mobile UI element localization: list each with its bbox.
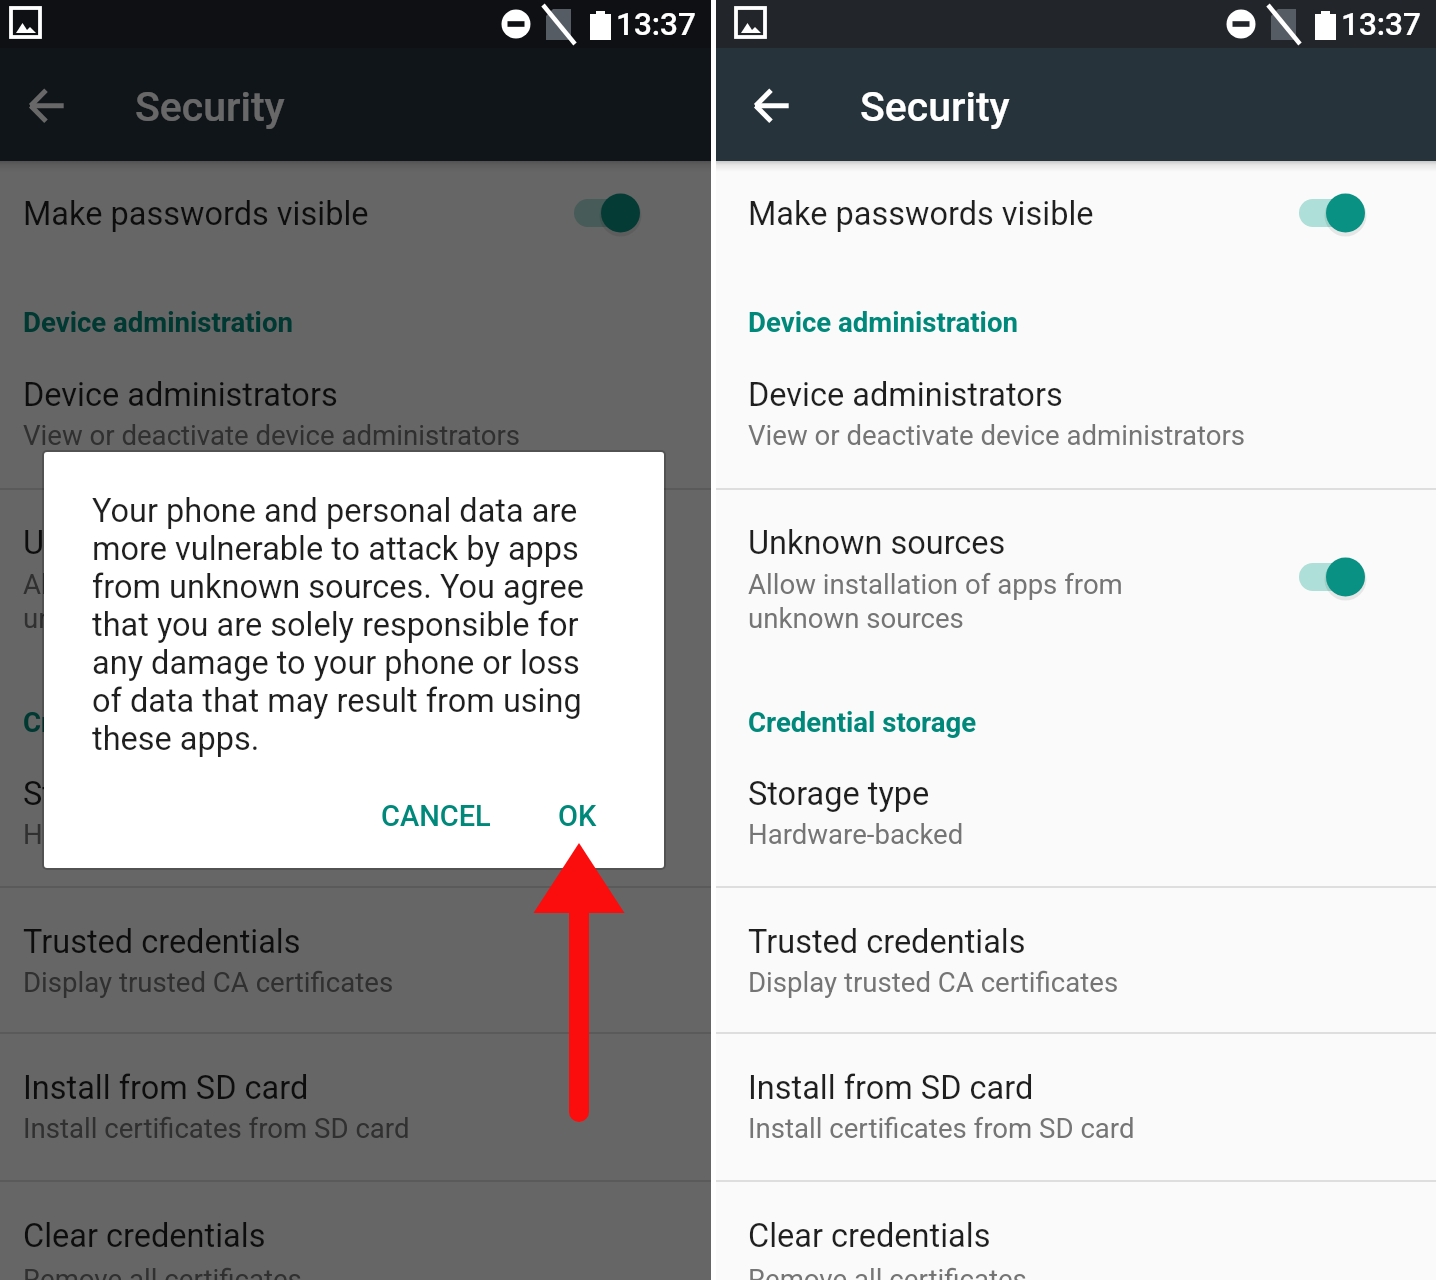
- staticText: Unknown sources: [23, 524, 281, 562]
- button[interactable]: [716, 888, 1436, 1032]
- staticText: Device administration: [23, 306, 293, 338]
- button[interactable]: [0, 296, 711, 488]
- staticText: OK: [558, 799, 597, 833]
- button[interactable]: [0, 161, 711, 276]
- staticText: Security: [135, 83, 285, 131]
- staticText: Hardware-backed: [23, 818, 239, 850]
- staticText: Clear credentials: [23, 1217, 266, 1255]
- staticText: Trusted credentials: [748, 923, 1026, 961]
- button[interactable]: [0, 490, 711, 886]
- staticText: Display trusted CA certificates: [23, 966, 394, 998]
- button[interactable]: [716, 296, 1436, 488]
- staticText: unknown sources: [748, 602, 964, 634]
- staticText: Allow installation of apps from: [748, 568, 1123, 600]
- staticText: Display trusted CA certificates: [748, 966, 1119, 998]
- staticText: Credential storage: [748, 706, 977, 738]
- button[interactable]: CANCEL: [357, 781, 515, 851]
- staticText: Install from SD card: [23, 1069, 309, 1107]
- staticText: View or deactivate device administrators: [748, 419, 1246, 451]
- button[interactable]: [0, 1034, 711, 1180]
- staticText: Storage type: [23, 775, 205, 813]
- staticText: Install certificates from SD card: [748, 1112, 1135, 1144]
- staticText: unknown sources: [23, 602, 239, 634]
- staticText: Install certificates from SD card: [23, 1112, 410, 1144]
- staticText: 13:37: [616, 6, 696, 43]
- staticText: Clear credentials: [748, 1217, 991, 1255]
- staticText: Security: [860, 83, 1010, 131]
- button[interactable]: Back: [3, 50, 77, 124]
- staticText: View or deactivate device administrators: [23, 419, 521, 451]
- button[interactable]: [716, 161, 1436, 276]
- staticText: 13:37: [616, 6, 696, 43]
- staticText: 13:37: [1341, 6, 1421, 43]
- button[interactable]: [716, 490, 1436, 886]
- button[interactable]: [716, 1182, 1436, 1280]
- staticText: Trusted credentials: [23, 923, 301, 961]
- staticText: Make passwords visible: [748, 195, 1094, 233]
- staticText: Storage type: [748, 775, 930, 813]
- staticText: Install from SD card: [748, 1069, 1034, 1107]
- button[interactable]: [0, 1182, 711, 1280]
- staticText: Device administrators: [23, 376, 338, 414]
- staticText: Unknown sources: [748, 524, 1006, 562]
- staticText: Remove all certificates: [23, 1263, 302, 1280]
- staticText: CANCEL: [381, 799, 491, 833]
- button[interactable]: OK: [534, 781, 621, 851]
- staticText: Hardware-backed: [748, 818, 964, 850]
- staticText: Your phone and personal data are more vu…: [92, 492, 585, 758]
- staticText: Device administrators: [748, 376, 1063, 414]
- staticText: Allow installation of apps from: [23, 568, 398, 600]
- button[interactable]: [0, 888, 711, 1032]
- staticText: Device administration: [748, 306, 1018, 338]
- staticText: Credential storage: [23, 706, 252, 738]
- button[interactable]: Back: [728, 50, 802, 124]
- staticText: Remove all certificates: [748, 1263, 1027, 1280]
- staticText: Make passwords visible: [23, 195, 369, 233]
- button[interactable]: [716, 1034, 1436, 1180]
